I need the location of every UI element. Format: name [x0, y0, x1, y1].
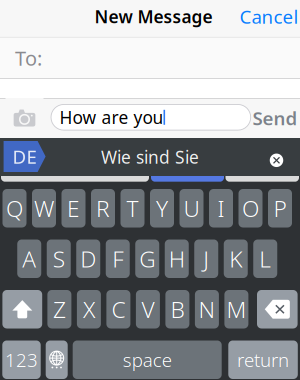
staticText: J [203, 244, 209, 274]
staticText: O [242, 193, 259, 223]
staticText: B [170, 294, 184, 324]
staticText: Send [252, 106, 297, 130]
staticText: return [237, 347, 289, 372]
staticText: N [198, 294, 215, 324]
button[interactable]: B [165, 290, 189, 328]
staticText: D [80, 244, 96, 274]
button[interactable]: W [32, 189, 56, 227]
button[interactable]: Delete [257, 290, 298, 328]
button[interactable]: Send [252, 98, 298, 138]
button[interactable]: F [106, 239, 130, 278]
staticText: A [22, 244, 36, 274]
button[interactable]: M [224, 290, 248, 328]
staticText: How are you [59, 106, 163, 129]
button[interactable]: J [194, 239, 218, 278]
staticText: M [226, 294, 246, 324]
button[interactable]: V [136, 290, 160, 328]
staticText: E [67, 193, 80, 223]
staticText: Cancel [239, 4, 298, 29]
staticText: T [126, 193, 138, 223]
button[interactable]: space [73, 340, 222, 379]
button[interactable]: Q [2, 189, 26, 227]
button[interactable]: X [77, 290, 101, 328]
staticText: P [273, 193, 286, 223]
staticText: U [183, 193, 199, 223]
staticText: New Message [94, 5, 212, 28]
button[interactable]: L [253, 239, 277, 278]
staticText: Z [53, 294, 66, 324]
staticText: Q [6, 193, 23, 223]
button[interactable]: C [106, 290, 130, 328]
button[interactable]: D [76, 239, 100, 278]
button[interactable]: Cancel [238, 0, 300, 35]
button[interactable]: A [17, 239, 41, 278]
button[interactable]: U [179, 189, 203, 227]
button[interactable]: 123 [2, 340, 41, 379]
button[interactable]: N [195, 290, 219, 328]
button[interactable]: return [228, 340, 298, 379]
staticText: Wie sind Sie [101, 145, 199, 168]
staticText: X [83, 294, 95, 324]
staticText: H [169, 244, 185, 274]
staticText: Y [156, 193, 168, 223]
button[interactable]: Shift [2, 290, 42, 328]
button[interactable]: How are you [51, 104, 251, 130]
button[interactable]: K [224, 239, 248, 278]
staticText: S [53, 244, 65, 274]
button[interactable]: Take photo [5, 98, 43, 138]
staticText: R [96, 193, 110, 223]
button[interactable]: Y [150, 189, 174, 227]
button[interactable]: T [120, 189, 144, 227]
button[interactable]: R [91, 189, 115, 227]
staticText: DE [13, 144, 37, 169]
button[interactable]: E [61, 189, 85, 227]
staticText: I [217, 193, 224, 223]
staticText: W [34, 193, 54, 223]
button[interactable]: H [165, 239, 189, 278]
button[interactable]: Dismiss translation [264, 148, 288, 172]
staticText: L [259, 244, 271, 274]
staticText: 123 [5, 347, 38, 372]
staticText: F [112, 244, 123, 274]
button[interactable]: P [268, 189, 292, 227]
button[interactable]: I [209, 189, 233, 227]
button[interactable]: G [135, 239, 159, 278]
staticText: K [229, 244, 242, 274]
staticText: To: [15, 45, 42, 71]
staticText: space [123, 347, 172, 372]
button[interactable]: Z [47, 290, 71, 328]
button[interactable]: O [238, 189, 262, 227]
staticText: V [141, 294, 154, 324]
staticText: C [111, 294, 125, 324]
button[interactable]: Next keyboard [46, 340, 68, 379]
staticText: G [139, 244, 155, 274]
button[interactable]: S [47, 239, 71, 278]
